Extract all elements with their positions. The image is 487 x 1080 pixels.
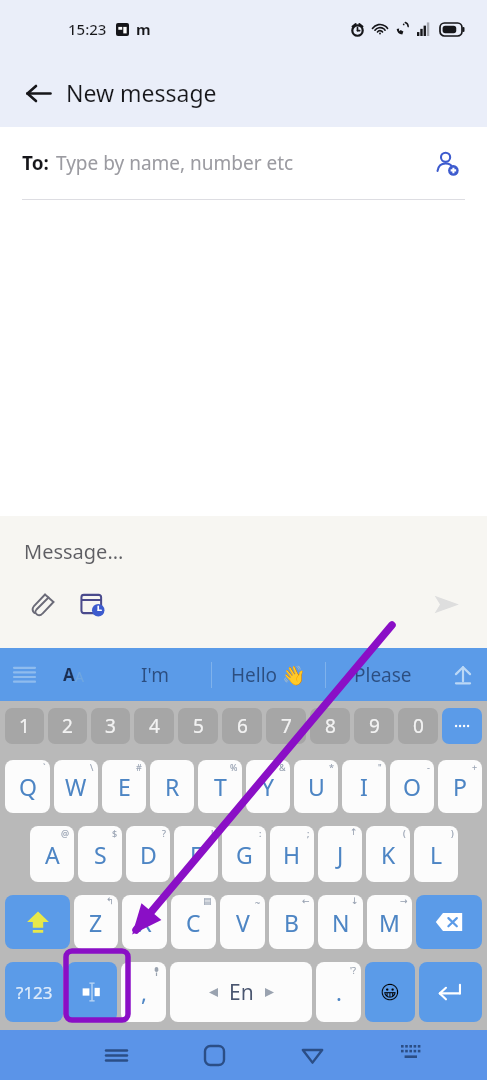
button[interactable]: N [318,895,363,949]
staticText: " [378,761,382,773]
button[interactable]: Text style [48,648,98,701]
button[interactable]: S [78,826,122,882]
button[interactable]: Menu [0,648,48,701]
button[interactable]: Schedule message [72,584,112,624]
staticText: A [45,839,60,870]
button[interactable]: G [222,826,266,882]
button[interactable]: U [294,760,338,813]
button[interactable]: T [198,760,242,813]
button[interactable]: Space, English [170,962,312,1022]
button[interactable]: Message... [24,538,124,565]
button[interactable]: 4 [134,708,174,744]
button[interactable]: To: [0,127,487,199]
staticText: . [336,977,342,1007]
button[interactable]: More [442,708,482,744]
button[interactable]: Emoji [365,962,415,1022]
button[interactable]: Expand [439,648,487,701]
staticText: J [337,839,344,870]
staticText: M [379,907,400,938]
button[interactable]: 5 [178,708,218,744]
button[interactable]: R [150,760,194,813]
staticText: En [229,978,254,1007]
button[interactable]: ?123 [5,962,63,1022]
staticText: & [279,761,286,773]
staticText: Q [19,771,37,802]
staticText: Type by name, number etc [56,150,294,176]
staticText: @ [61,827,70,839]
staticText: ; [307,827,310,839]
button[interactable]: . [316,962,361,1022]
staticText: H [283,839,301,870]
staticText: O [403,771,421,802]
staticText: ↑ [350,827,358,837]
button[interactable]: 3 [91,708,130,744]
staticText: To: [22,150,49,176]
button[interactable]: L [414,826,458,882]
button[interactable]: O [390,760,434,813]
staticText: I'm [141,662,169,688]
staticText: S [94,839,107,870]
button[interactable]: H [270,826,314,882]
button[interactable]: F [174,826,218,882]
staticText: - [427,761,430,773]
staticText: Hello 👋 [231,662,306,688]
staticText: P [453,771,467,802]
button[interactable]: Home [178,1030,251,1080]
staticText: W [65,771,87,802]
staticText: 2 [62,713,73,739]
staticText: '? [350,964,356,976]
button[interactable]: J [318,826,362,882]
button[interactable]: C [171,895,216,949]
button[interactable]: Back [276,1030,349,1080]
button[interactable]: E [102,760,146,813]
staticText: T [214,771,227,802]
button[interactable]: M [367,895,412,949]
staticText: 8 [325,713,336,739]
staticText: , [141,977,147,1007]
button[interactable]: Hide keyboard [374,1030,447,1080]
button[interactable]: Please [326,648,439,701]
button[interactable]: Split keyboard [67,962,117,1022]
button[interactable]: X [122,895,167,949]
button[interactable]: 9 [354,708,394,744]
button[interactable]: D [126,826,170,882]
button[interactable]: Recents [80,1030,153,1080]
button[interactable]: Shift [5,895,70,949]
staticText: ? [162,827,166,839]
button[interactable]: Enter [419,962,482,1022]
staticText: 7 [281,713,292,739]
button[interactable]: Z [74,895,118,949]
button[interactable]: 0 [398,708,438,744]
button[interactable]: V [220,895,265,949]
button[interactable]: 1 [5,708,44,744]
staticText: ` [43,761,46,773]
button[interactable]: Attach [22,584,62,624]
button[interactable]: 2 [48,708,87,744]
staticText: A [75,667,84,686]
staticText: \ [90,761,94,773]
button[interactable]: Backspace [416,895,482,949]
button[interactable]: 7 [266,708,306,744]
button[interactable]: 8 [310,708,350,744]
button[interactable]: , [121,962,166,1022]
button[interactable]: W [54,760,98,813]
button[interactable]: I'm [98,648,211,701]
staticText: N [332,907,350,938]
button[interactable]: A [30,826,74,882]
staticText: B [284,907,299,938]
button[interactable]: 6 [222,708,262,744]
button[interactable]: B [269,895,314,949]
button[interactable]: K [366,826,410,882]
staticText: ← [302,896,310,906]
button[interactable]: Add contact [427,144,465,182]
button[interactable]: Back [14,69,62,117]
button[interactable]: P [438,760,482,813]
button[interactable]: Send [423,581,469,627]
button[interactable]: Q [5,760,50,813]
staticText: 😀 [380,981,400,1003]
staticText: ▤ [203,896,212,906]
button[interactable]: Y [246,760,290,813]
button[interactable]: I [342,760,386,813]
button[interactable]: Hello 👋 [212,648,325,701]
staticText: ↓ [351,896,359,906]
